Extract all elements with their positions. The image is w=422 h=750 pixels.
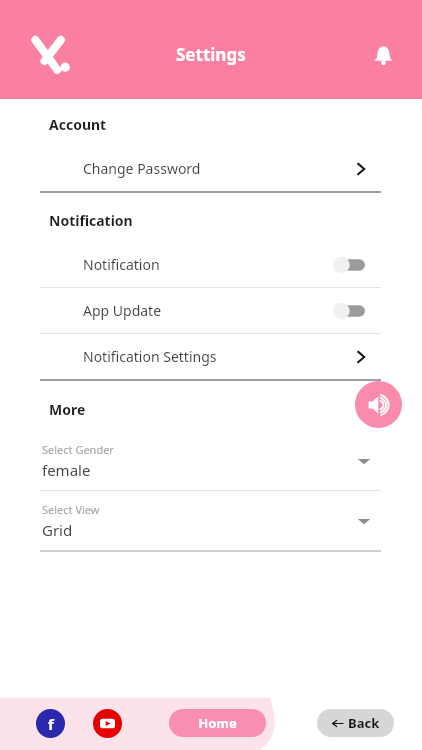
- button[interactable]: Notification Settings: [40, 334, 381, 379]
- staticText: Home: [198, 714, 237, 732]
- staticText: Grid: [42, 520, 73, 540]
- button[interactable]: Home: [169, 709, 266, 737]
- button[interactable]: App Update: [40, 288, 381, 333]
- button[interactable]: Back: [317, 709, 394, 737]
- button[interactable]: YouTube: [93, 709, 122, 738]
- button[interactable]: Sound: [355, 381, 402, 428]
- staticText: female: [42, 460, 91, 480]
- staticText: Select Gender: [42, 442, 114, 457]
- staticText: Notification Settings: [83, 347, 353, 366]
- button[interactable]: Select View: [40, 491, 381, 550]
- button[interactable]: App logo: [30, 32, 74, 76]
- button[interactable]: Change Password: [40, 146, 381, 191]
- staticText: Account: [49, 115, 107, 134]
- staticText: f: [48, 714, 54, 734]
- button[interactable]: Facebook: [36, 709, 65, 738]
- staticText: Notification: [49, 211, 133, 230]
- button[interactable]: Select Gender: [40, 431, 381, 490]
- staticText: Notification: [83, 255, 333, 274]
- staticText: Back: [348, 714, 380, 732]
- staticText: Select View: [42, 502, 100, 517]
- staticText: More: [49, 400, 86, 419]
- staticText: Settings: [176, 43, 246, 66]
- button[interactable]: Notification: [40, 242, 381, 287]
- staticText: App Update: [83, 301, 333, 320]
- staticText: Change Password: [83, 159, 353, 178]
- button[interactable]: Notifications: [366, 38, 400, 72]
